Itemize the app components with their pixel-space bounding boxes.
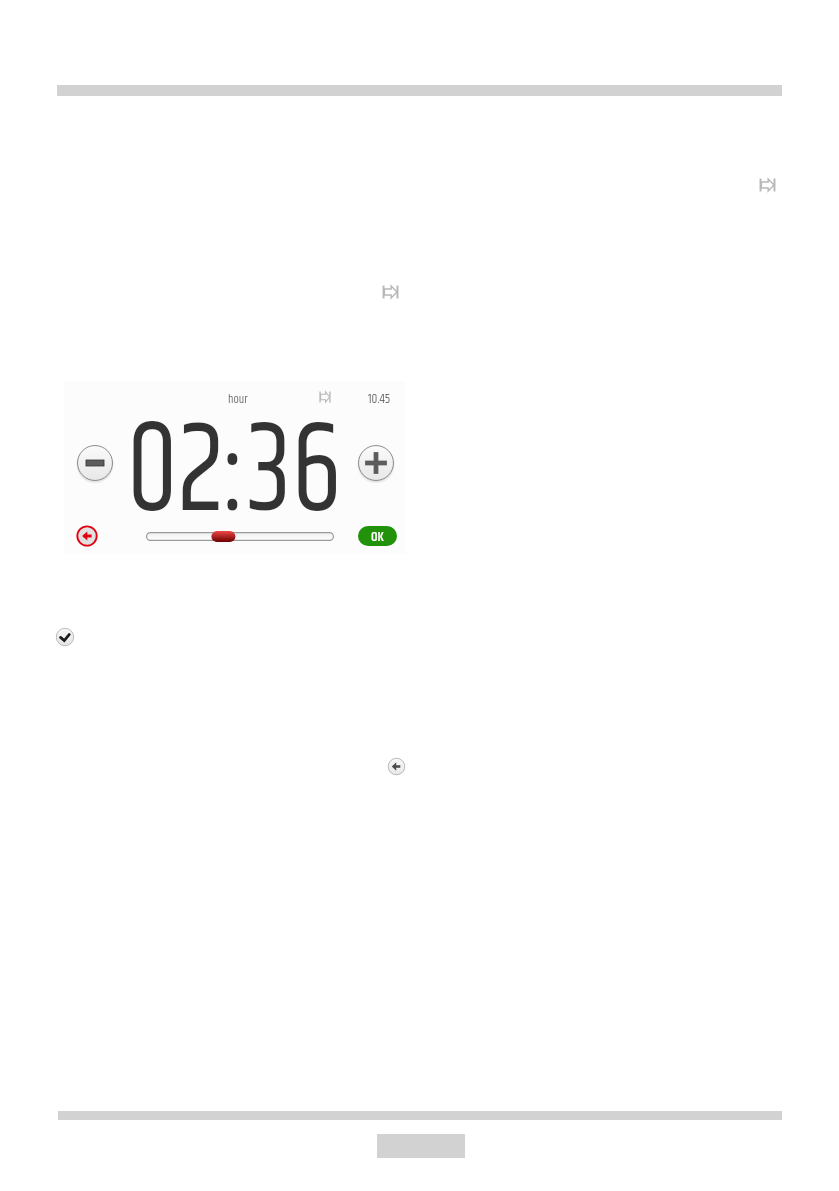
button[interactable]: Increase (358, 445, 394, 481)
button[interactable]: Next (759, 178, 776, 192)
staticText: 02:36 (127, 373, 341, 533)
button[interactable]: Back (388, 758, 405, 775)
button[interactable]: Back (76, 525, 98, 547)
button[interactable]: Adjust (146, 530, 334, 543)
staticText: hour (228, 390, 248, 408)
button[interactable]: Confirm (56, 628, 74, 646)
button[interactable]: Decrease (77, 445, 113, 481)
button[interactable]: OK (358, 526, 397, 546)
staticText: OK (371, 526, 384, 546)
staticText: 10.45 (368, 389, 391, 409)
button[interactable]: Next (382, 285, 399, 299)
